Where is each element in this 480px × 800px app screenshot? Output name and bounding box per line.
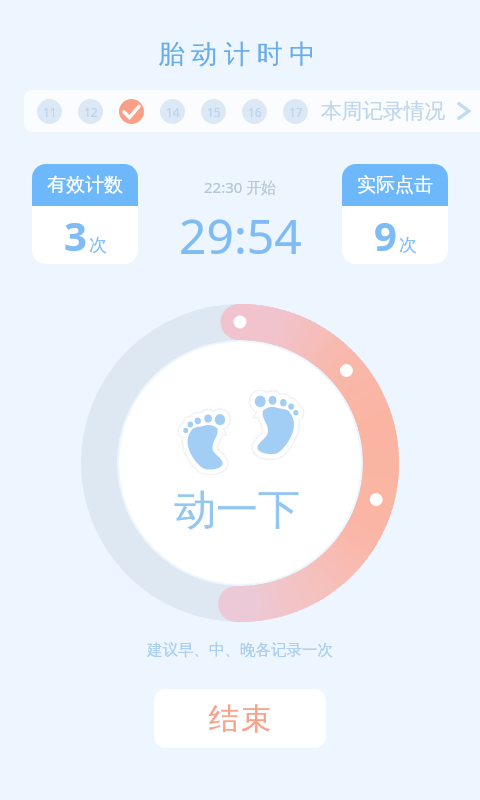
staticText: 22:30 开始: [204, 177, 277, 197]
staticText: 动一下: [174, 484, 300, 537]
staticText: 12: [84, 104, 98, 120]
staticText: 15: [207, 104, 221, 120]
staticText: 3: [64, 208, 87, 262]
staticText: 次: [399, 234, 417, 257]
staticText: 建议早、中、晚各记录一次: [147, 640, 333, 660]
button[interactable]: 有效计数: [32, 164, 138, 264]
staticText: 14: [166, 104, 180, 120]
staticText: 结束: [208, 700, 272, 738]
staticText: 16: [248, 104, 262, 120]
staticText: 17: [289, 104, 303, 120]
staticText: 9: [374, 208, 397, 262]
staticText: 实际点击: [357, 173, 433, 197]
staticText: 胎动计时中: [155, 38, 319, 71]
button[interactable]: 动一下: [81, 304, 399, 622]
staticText: 次: [89, 234, 107, 257]
button[interactable]: 结束: [154, 689, 326, 748]
staticText: 有效计数: [47, 173, 123, 197]
button[interactable]: 11: [24, 90, 480, 132]
staticText: 本周记录情况: [321, 98, 446, 124]
button[interactable]: 实际点击: [342, 164, 448, 264]
staticText: 11: [43, 104, 57, 120]
staticText: 29:54: [179, 203, 302, 268]
